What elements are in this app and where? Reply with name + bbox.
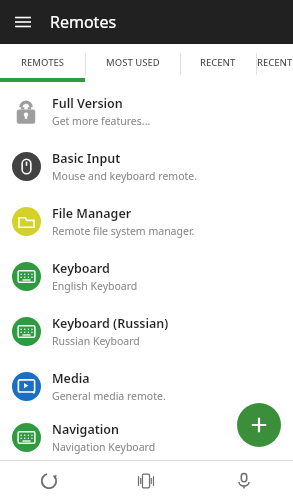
button[interactable]: RECENT xyxy=(180,44,256,84)
staticText: File Manager xyxy=(52,205,132,222)
staticText: Russian Keyboard xyxy=(52,334,140,348)
staticText: MOST USED xyxy=(106,56,160,69)
button[interactable]: Open navigation menu xyxy=(10,9,36,35)
button[interactable]: File Manager xyxy=(0,194,293,249)
staticText: Navigation Keyboard xyxy=(52,440,156,454)
staticText: English Keyboard xyxy=(52,279,138,293)
staticText: RECENT xyxy=(257,56,293,69)
button[interactable]: Vibrate device xyxy=(97,461,195,500)
staticText: Remotes xyxy=(50,11,117,33)
button[interactable]: Add remote xyxy=(237,403,281,447)
button[interactable]: Keyboard xyxy=(0,249,293,304)
button[interactable]: Voice input xyxy=(195,461,293,500)
button[interactable]: MOST USED xyxy=(85,44,180,84)
button[interactable]: REMOTES xyxy=(0,44,85,84)
staticText: Basic Input xyxy=(52,150,121,167)
staticText: Full Version xyxy=(52,95,123,112)
staticText: Remote file system manager. xyxy=(52,224,195,238)
button[interactable]: Full Version xyxy=(0,84,293,139)
staticText: Mouse and keyboard remote. xyxy=(52,169,198,183)
staticText: Keyboard (Russian) xyxy=(52,315,169,332)
staticText: General media remote. xyxy=(52,389,166,403)
staticText: Get more features... xyxy=(52,114,151,128)
staticText: RECENT xyxy=(200,56,236,69)
staticText: REMOTES xyxy=(21,56,65,69)
button[interactable]: Navigation xyxy=(0,414,293,460)
button[interactable]: Keyboard (Russian) xyxy=(0,304,293,359)
button[interactable]: Basic Input xyxy=(0,139,293,194)
button[interactable]: Media xyxy=(0,359,293,414)
button[interactable]: RECENT xyxy=(256,44,293,84)
staticText: Keyboard xyxy=(52,260,110,277)
staticText: Media xyxy=(52,370,90,387)
button[interactable]: Refresh xyxy=(0,461,97,500)
staticText: Navigation xyxy=(52,421,120,438)
